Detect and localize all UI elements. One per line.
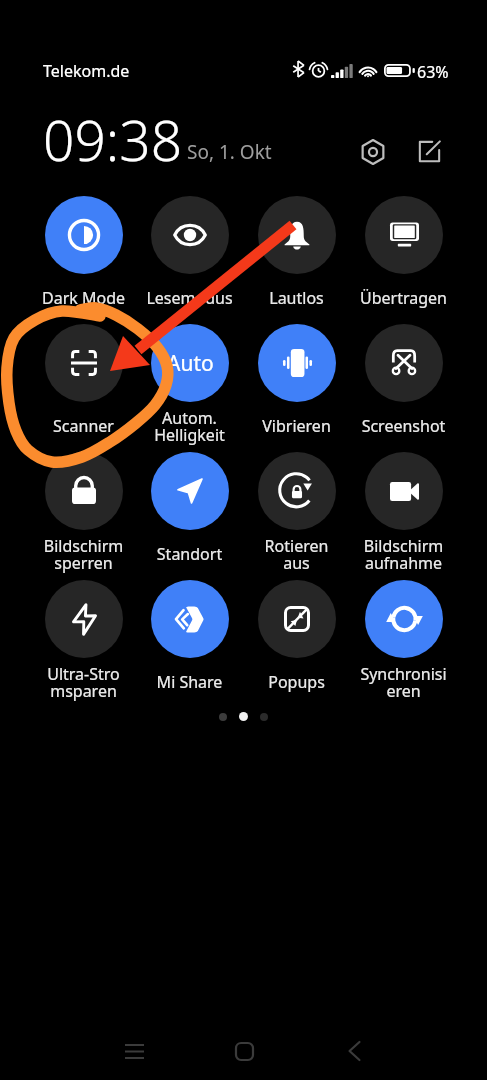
staticText: Scanner bbox=[30, 415, 137, 437]
button[interactable]: Lesemodus bbox=[136, 196, 243, 314]
button[interactable]: Dark Mode bbox=[30, 196, 137, 314]
button[interactable]: Bildschirm aufnahme bbox=[350, 452, 457, 570]
staticText: Übertragen bbox=[350, 287, 457, 309]
staticText: Ultra-Stro msparen bbox=[30, 663, 137, 702]
staticText: Screenshot bbox=[350, 415, 457, 437]
button[interactable]: Scanner bbox=[30, 324, 137, 442]
staticText: So, 1. Okt bbox=[187, 139, 272, 165]
staticText: Bildschirm aufnahme bbox=[350, 535, 457, 574]
button[interactable]: Autom. Helligkeit bbox=[136, 324, 243, 442]
button[interactable]: Recents bbox=[97, 1027, 171, 1075]
button[interactable]: Home bbox=[207, 1027, 281, 1075]
staticText: Synchronisi eren bbox=[350, 663, 457, 702]
button[interactable]: Edit bbox=[412, 134, 447, 169]
staticText: Standort bbox=[136, 543, 243, 565]
staticText: 09:38 bbox=[43, 102, 183, 177]
button[interactable]: Standort bbox=[136, 452, 243, 570]
button[interactable]: Lautlos bbox=[243, 196, 350, 314]
staticText: Autom. Helligkeit bbox=[136, 407, 243, 446]
button[interactable]: Übertragen bbox=[350, 196, 457, 314]
staticText: Popups bbox=[243, 671, 350, 693]
staticText: Vibrieren bbox=[243, 415, 350, 437]
button[interactable]: Mi Share bbox=[136, 580, 243, 698]
button[interactable]: Vibrieren bbox=[243, 324, 350, 442]
staticText: Lesemodus bbox=[136, 287, 243, 309]
staticText: Auto bbox=[167, 349, 214, 378]
staticText: Telekom.de bbox=[43, 60, 130, 82]
staticText: Lautlos bbox=[243, 287, 350, 309]
button[interactable]: Screenshot bbox=[350, 324, 457, 442]
button[interactable]: Ultra-Stro msparen bbox=[30, 580, 137, 698]
staticText: Dark Mode bbox=[30, 287, 137, 309]
staticText: Mi Share bbox=[136, 671, 243, 693]
button[interactable]: Settings bbox=[355, 134, 390, 169]
staticText: 63% bbox=[417, 61, 449, 83]
staticText: Rotieren aus bbox=[243, 535, 350, 574]
button[interactable]: Back bbox=[317, 1027, 391, 1075]
button[interactable]: Synchronisi eren bbox=[350, 580, 457, 698]
button[interactable]: Rotieren aus bbox=[243, 452, 350, 570]
staticText: Bildschirm sperren bbox=[30, 535, 137, 574]
button[interactable]: Bildschirm sperren bbox=[30, 452, 137, 570]
button[interactable]: Popups bbox=[243, 580, 350, 698]
